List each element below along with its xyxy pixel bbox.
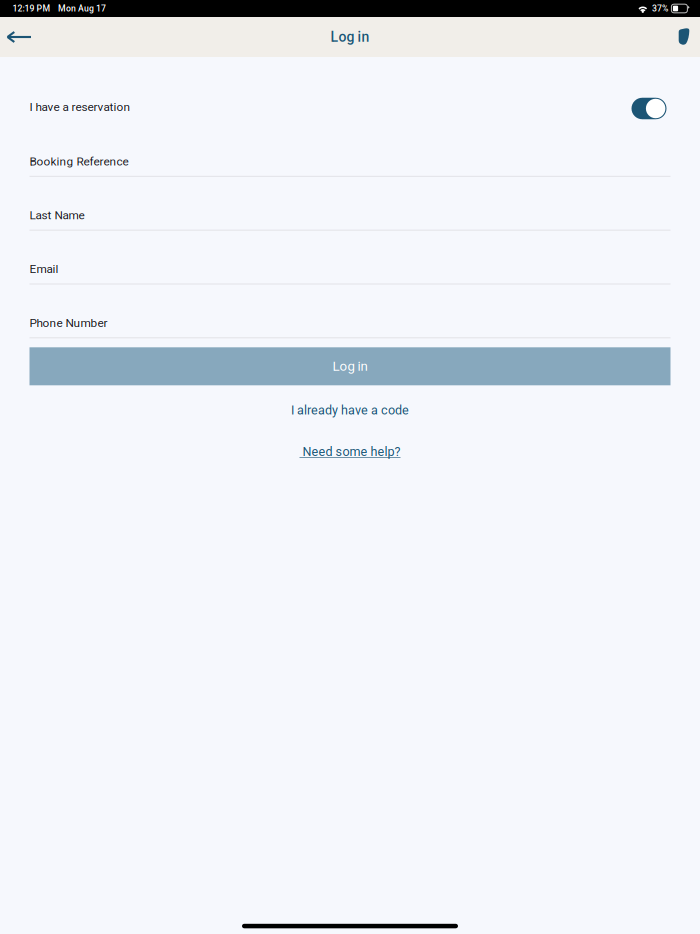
- staticText: Need some help?: [299, 444, 400, 459]
- button[interactable]: I have a reservation: [631, 96, 670, 118]
- button[interactable]: Back: [0, 17, 38, 57]
- staticText: Mon Aug 17: [58, 3, 106, 14]
- staticText: Booking Reference: [29, 154, 128, 168]
- button[interactable]: Account: [671, 17, 697, 57]
- staticText: Phone Number: [29, 316, 107, 330]
- staticText: Last Name: [29, 208, 84, 222]
- staticText: Log in: [330, 29, 369, 45]
- staticText: I already have a code: [291, 403, 409, 418]
- button[interactable]: Need some help?: [29, 439, 670, 465]
- staticText: 12:19 PM: [12, 3, 50, 14]
- staticText: Email: [29, 262, 58, 276]
- staticText: 37%: [652, 3, 668, 14]
- button[interactable]: I already have a code: [29, 396, 670, 424]
- staticText: Log in: [332, 358, 367, 374]
- staticText: I have a reservation: [29, 100, 130, 114]
- button[interactable]: Log in: [29, 347, 670, 385]
